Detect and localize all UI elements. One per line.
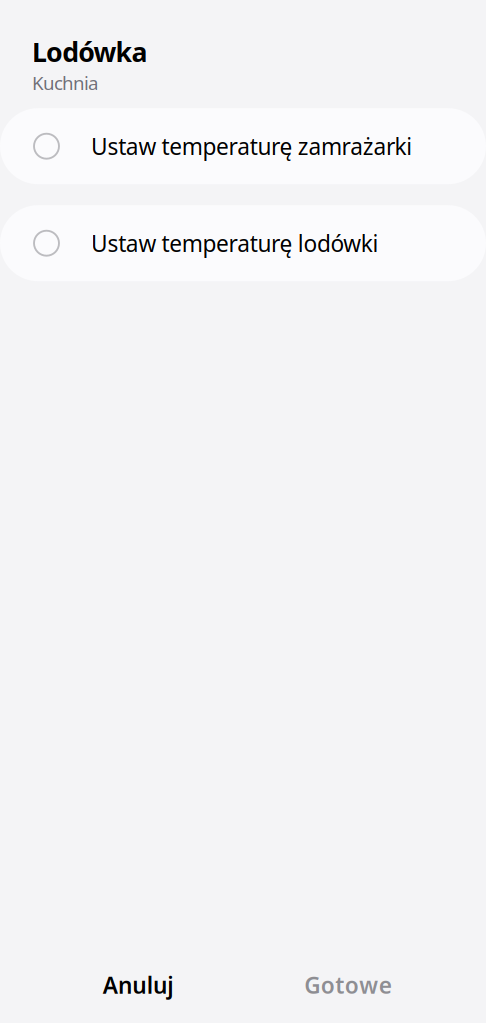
staticText: Gotowe [304, 970, 392, 1000]
button[interactable]: Ustaw temperaturę lodówki [0, 205, 486, 281]
staticText: Ustaw temperaturę lodówki [91, 228, 378, 258]
staticText: Lodówka [32, 34, 148, 69]
staticText: Anuluj [103, 970, 173, 1000]
staticText: Kuchnia [32, 70, 98, 95]
button[interactable]: Gotowe [243, 963, 453, 1007]
staticText: Ustaw temperaturę zamrażarki [91, 131, 412, 161]
button[interactable]: Ustaw temperaturę zamrażarki [0, 108, 486, 184]
button[interactable]: Anuluj [33, 963, 243, 1007]
